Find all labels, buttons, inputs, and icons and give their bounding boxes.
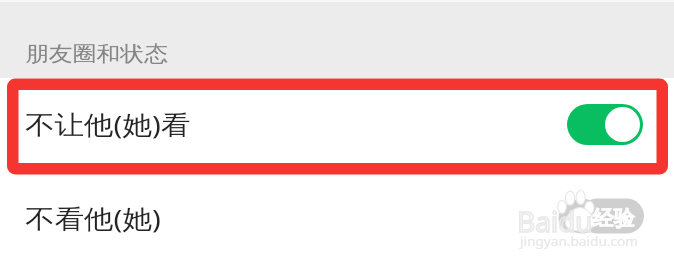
staticText: 朋友圈和状态: [25, 41, 168, 67]
button[interactable]: 不看他(她): [0, 170, 674, 265]
button[interactable]: 不让他(她)看: [0, 78, 674, 170]
button[interactable]: Toggle hide my moments from this contact: [567, 104, 643, 145]
staticText: 不看他(她): [25, 200, 161, 236]
staticText: 不让他(她)看: [25, 106, 191, 142]
